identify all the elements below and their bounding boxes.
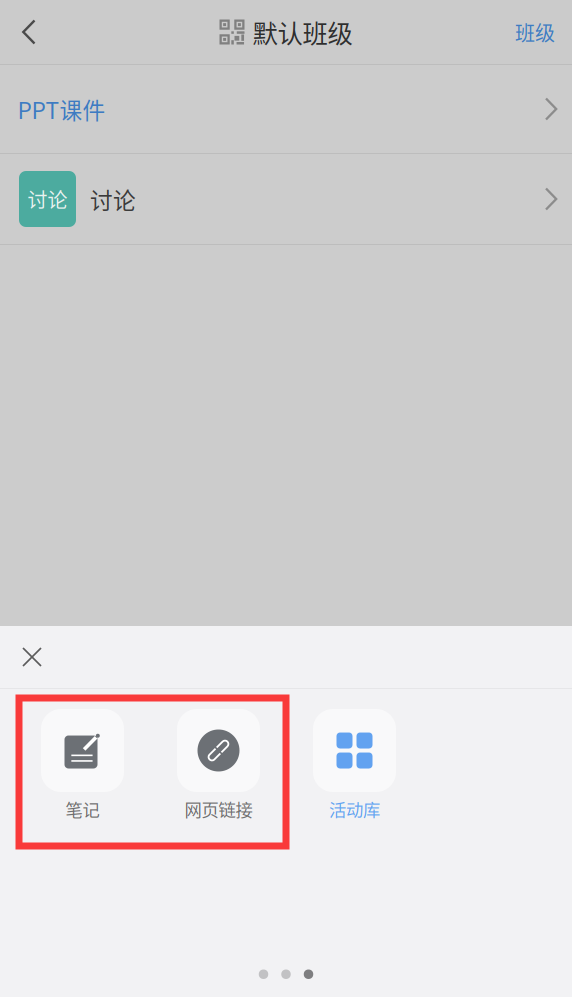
- staticText: 网页链接: [184, 796, 252, 822]
- staticText: 活动库: [329, 796, 380, 822]
- staticText: 笔记: [65, 796, 99, 822]
- button[interactable]: Close: [0, 626, 64, 688]
- button[interactable]: 网页链接: [150, 709, 286, 826]
- button[interactable]: Back: [0, 0, 57, 64]
- button[interactable]: PPT课件: [0, 65, 572, 153]
- staticText: 讨论: [27, 184, 67, 213]
- button[interactable]: 讨论: [0, 154, 572, 244]
- button[interactable]: 活动库: [286, 709, 422, 826]
- staticText: 默认班级: [252, 14, 352, 50]
- button[interactable]: 班级: [498, 0, 572, 64]
- staticText: PPT课件: [17, 93, 105, 125]
- button[interactable]: 笔记: [14, 709, 150, 826]
- staticText: 讨论: [90, 183, 136, 215]
- staticText: 班级: [515, 17, 555, 46]
